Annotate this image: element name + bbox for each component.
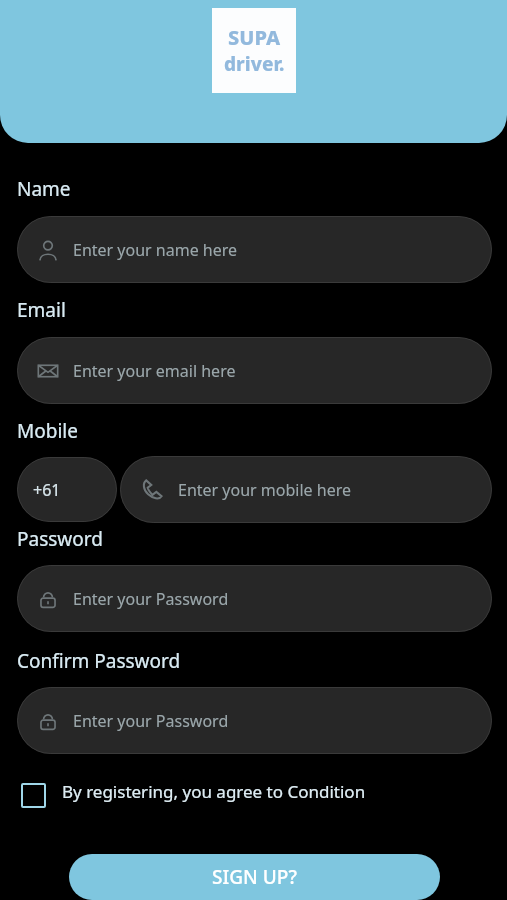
staticText: Enter your Password (73, 710, 229, 732)
button[interactable]: By registering, you agree to Condition (17, 778, 492, 810)
button[interactable]: +61 (17, 457, 117, 522)
button[interactable]: Enter your name here (17, 216, 492, 283)
staticText: Mobile (17, 418, 78, 444)
staticText: +61 (33, 479, 61, 501)
staticText: Enter your Password (73, 588, 229, 610)
staticText: Confirm Password (17, 648, 181, 674)
staticText: SUPA (228, 24, 281, 51)
staticText: SIGN UP? (212, 864, 297, 890)
staticText: Email (17, 297, 66, 323)
staticText: driver. (224, 51, 285, 77)
button[interactable]: SIGN UP? (69, 854, 440, 900)
staticText: Password (17, 526, 103, 552)
staticText: Enter your name here (73, 239, 238, 261)
staticText: Enter your mobile here (178, 479, 351, 501)
staticText: Enter your email here (73, 360, 236, 382)
staticText: Name (17, 176, 71, 202)
button[interactable]: Enter your mobile here (120, 456, 492, 523)
button[interactable]: Enter your Password (17, 565, 492, 632)
button[interactable]: Enter your Password (17, 687, 492, 754)
staticText: By registering, you agree to Condition (62, 780, 366, 803)
button[interactable]: Enter your email here (17, 337, 492, 404)
